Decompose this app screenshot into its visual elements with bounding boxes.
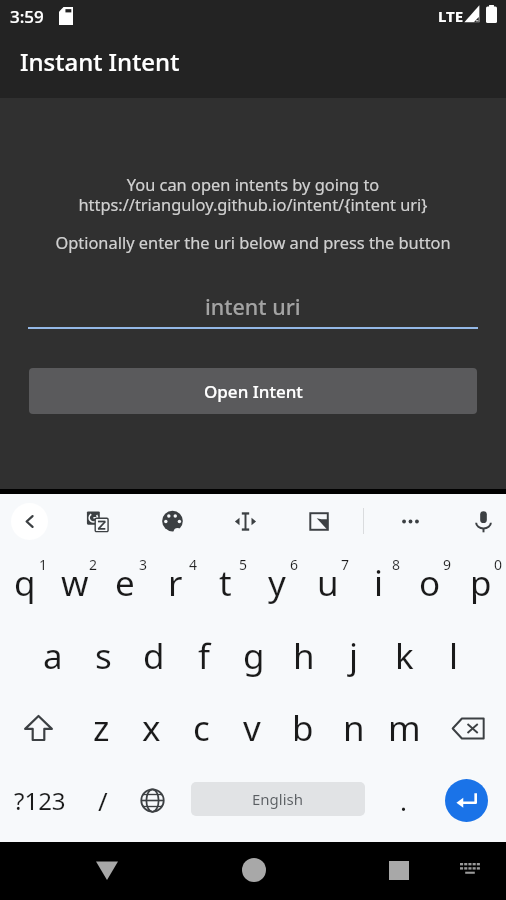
staticText: a	[43, 632, 63, 680]
button[interactable]: o	[404, 547, 455, 619]
staticText: o	[419, 559, 441, 607]
button[interactable]: intent uri	[28, 293, 478, 329]
staticText: i	[374, 559, 384, 607]
button[interactable]: x	[126, 692, 176, 764]
button[interactable]: g	[229, 620, 279, 692]
button[interactable]: p	[455, 547, 506, 619]
button[interactable]: q	[0, 547, 50, 619]
staticText: g	[243, 632, 265, 680]
staticText: h	[293, 632, 315, 680]
button[interactable]: w	[50, 547, 100, 619]
button[interactable]: Shift	[0, 692, 76, 764]
staticText: 0	[494, 555, 503, 574]
staticText: intent uri	[205, 292, 301, 321]
button[interactable]: k	[379, 620, 429, 692]
button[interactable]: y	[251, 547, 302, 619]
button[interactable]: b	[277, 692, 328, 764]
button[interactable]: d	[129, 620, 179, 692]
staticText: 5	[239, 555, 248, 574]
staticText: v	[243, 704, 261, 752]
staticText: y	[268, 559, 286, 607]
button[interactable]: Enter	[434, 764, 498, 836]
button[interactable]: l	[429, 620, 479, 692]
button[interactable]: v	[226, 692, 277, 764]
staticText: ?123	[14, 784, 66, 817]
button[interactable]: /	[81, 764, 125, 836]
staticText: x	[142, 704, 161, 752]
staticText: /	[98, 783, 108, 818]
staticText: d	[143, 632, 165, 680]
button[interactable]: f	[179, 620, 229, 692]
button[interactable]: ?123	[4, 764, 76, 836]
button[interactable]: u	[302, 547, 353, 619]
button[interactable]: c	[176, 692, 226, 764]
button[interactable]: Switch keyboard	[453, 853, 487, 887]
staticText: 9	[443, 555, 452, 574]
staticText: You can open intents by going to https:/…	[0, 173, 506, 216]
button[interactable]: .	[381, 764, 425, 836]
button[interactable]: Open Intent	[29, 368, 477, 414]
staticText: Open Intent	[204, 380, 303, 403]
button[interactable]: Back	[11, 503, 48, 540]
button[interactable]: Themes	[150, 499, 194, 543]
staticText: 1	[39, 555, 48, 574]
button[interactable]: m	[379, 692, 430, 764]
button[interactable]: Home	[232, 848, 276, 892]
button[interactable]: Recents	[377, 848, 421, 892]
staticText: s	[95, 632, 112, 680]
staticText: 7	[341, 555, 350, 574]
staticText: 3:59	[10, 5, 44, 28]
staticText: w	[61, 559, 89, 607]
button[interactable]: Change language	[128, 764, 176, 836]
button[interactable]: n	[328, 692, 379, 764]
staticText: j	[349, 632, 359, 680]
button[interactable]: Translate	[75, 499, 119, 543]
staticText: .	[400, 783, 407, 818]
staticText: n	[343, 704, 365, 752]
staticText: k	[395, 632, 414, 680]
button[interactable]: Sticker	[297, 499, 341, 543]
button[interactable]: t	[200, 547, 251, 619]
staticText: c	[193, 704, 210, 752]
staticText: z	[93, 704, 110, 752]
staticText: 4	[189, 555, 198, 574]
staticText: f	[198, 632, 211, 680]
staticText: b	[292, 704, 314, 752]
button[interactable]: Text editing	[223, 499, 267, 543]
button[interactable]: Voice input	[461, 499, 505, 543]
staticText: p	[470, 559, 492, 607]
staticText: u	[317, 559, 339, 607]
button[interactable]: s	[78, 620, 129, 692]
button[interactable]: Back	[85, 848, 129, 892]
button[interactable]: r	[150, 547, 200, 619]
button[interactable]: h	[279, 620, 329, 692]
staticText: 6	[290, 555, 299, 574]
staticText: m	[388, 704, 421, 752]
button[interactable]: e	[100, 547, 150, 619]
staticText: 8	[392, 555, 401, 574]
staticText: LTE	[438, 6, 464, 26]
staticText: q	[14, 559, 36, 607]
staticText: t	[219, 559, 232, 607]
button[interactable]: More options	[388, 499, 432, 543]
staticText: English	[252, 789, 304, 809]
button[interactable]: i	[353, 547, 404, 619]
button[interactable]: English	[191, 782, 365, 816]
button[interactable]: j	[329, 620, 379, 692]
staticText: e	[115, 559, 135, 607]
button[interactable]: a	[27, 620, 78, 692]
staticText: 3	[139, 555, 148, 574]
button[interactable]: z	[76, 692, 126, 764]
staticText: Optionally enter the uri below and press…	[0, 231, 506, 253]
staticText: r	[168, 559, 183, 607]
staticText: 2	[89, 555, 98, 574]
staticText: Instant Intent	[20, 45, 180, 78]
button[interactable]: Backspace	[430, 692, 506, 764]
staticText: l	[449, 632, 459, 680]
